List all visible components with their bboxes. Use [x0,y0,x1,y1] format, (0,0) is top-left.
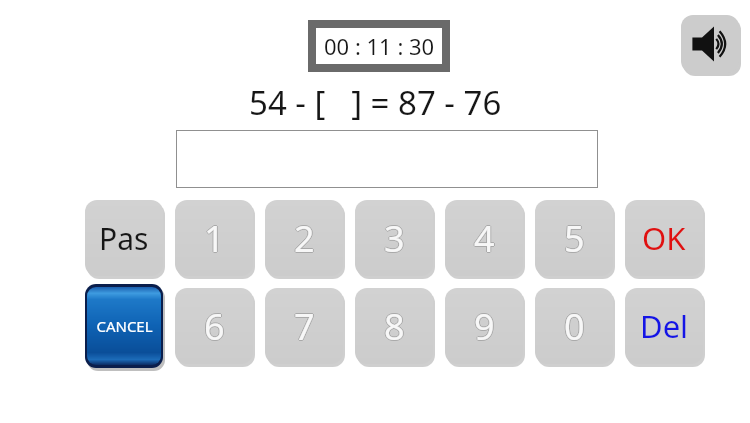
staticText: 9 [473,302,494,351]
staticText: 3 [384,213,405,262]
button[interactable]: 0 [535,288,613,364]
staticText: 6 [203,302,224,351]
staticText: 9 [475,302,496,351]
staticText: 3 [383,214,404,263]
staticText: 2 [293,214,314,263]
staticText: 4 [474,215,495,264]
staticText: 6 [204,303,225,352]
button[interactable]: 6 [175,288,253,364]
staticText: 1 [204,214,225,263]
staticText: 2 [294,214,315,263]
staticText: 9 [474,302,495,351]
staticText: 4 [473,214,494,263]
button[interactable]: CANCEL [85,284,163,368]
staticText: 00 : 11 : 30 [324,31,435,61]
staticText: 5 [564,214,585,263]
staticText: 0 [564,301,585,350]
staticText: 54 - [ ] = 87 - 76 [249,80,502,125]
button[interactable]: Pas [85,200,163,276]
button[interactable]: 8 [355,288,433,364]
staticText: 1 [204,213,225,262]
staticText: 8 [384,301,405,350]
staticText: 7 [294,303,315,352]
staticText: 6 [205,302,226,351]
staticText: 2 [294,215,315,264]
staticText: 0 [564,303,585,352]
staticText: 4 [474,214,495,263]
button[interactable]: 3 [355,200,433,276]
staticText: 5 [563,214,584,263]
staticText: OK [642,217,686,259]
staticText: 4 [475,214,496,263]
staticText: 2 [295,214,316,263]
staticText: 1 [204,215,225,264]
button[interactable]: OK [625,200,703,276]
staticText: 0 [564,302,585,351]
staticText: 6 [204,301,225,350]
button[interactable]: 5 [535,200,613,276]
staticText: 3 [384,215,405,264]
staticText: CANCEL [96,316,153,336]
button[interactable]: 4 [445,200,523,276]
staticText: 1 [203,214,224,263]
staticText: 9 [474,301,495,350]
staticText: 0 [565,302,586,351]
staticText: 0 [563,302,584,351]
staticText: 7 [293,302,314,351]
button[interactable]: 7 [265,288,343,364]
staticText: 2 [294,213,315,262]
staticText: Pas [99,218,149,259]
button[interactable]: 2 [265,200,343,276]
staticText: 8 [385,302,406,351]
staticText: Del [640,305,689,347]
staticText: 3 [385,214,406,263]
staticText: 4 [474,213,495,262]
staticText: 1 [205,214,226,263]
staticText: 5 [564,215,585,264]
staticText: 8 [384,302,405,351]
staticText: 3 [384,214,405,263]
staticText: 5 [564,213,585,262]
staticText: 5 [565,214,586,263]
button[interactable]: Del [625,288,703,364]
staticText: 9 [474,303,495,352]
button[interactable]: 9 [445,288,523,364]
staticText: 7 [295,302,316,351]
staticText: 8 [384,303,405,352]
staticText: 7 [294,302,315,351]
staticText: 6 [204,302,225,351]
button[interactable]: Sound [681,15,739,73]
button[interactable]: 1 [175,200,253,276]
staticText: 7 [294,301,315,350]
staticText: 8 [383,302,404,351]
